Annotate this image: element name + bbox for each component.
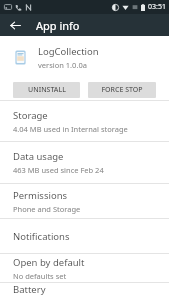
staticText: version 1.0.0a xyxy=(38,60,87,70)
staticText: No defaults set xyxy=(13,271,67,281)
staticText: Notifications xyxy=(13,230,70,243)
staticText: FORCE STOP xyxy=(101,85,143,95)
button[interactable]: Battery xyxy=(0,283,169,300)
button[interactable]: Storage xyxy=(0,101,169,141)
staticText: Phone and Storage xyxy=(13,204,81,214)
button[interactable]: Data usage xyxy=(0,142,169,183)
staticText: Battery xyxy=(13,283,46,296)
button[interactable]: Permissions xyxy=(0,184,169,218)
button[interactable]: LogCollection xyxy=(0,36,169,79)
button[interactable]: Back xyxy=(7,17,23,33)
staticText: Open by default xyxy=(13,256,85,269)
button[interactable]: UNINSTALL xyxy=(13,82,80,98)
button[interactable]: FORCE STOP xyxy=(88,82,156,98)
staticText: UNINSTALL xyxy=(28,85,66,95)
button[interactable]: Notifications xyxy=(0,219,169,253)
button[interactable]: Open by default xyxy=(0,254,169,282)
staticText: 463 MB used since Feb 24 xyxy=(13,165,104,175)
staticText: LogCollection xyxy=(38,45,99,58)
staticText: Storage xyxy=(13,109,48,122)
staticText: Data usage xyxy=(13,150,64,163)
staticText: App info xyxy=(36,18,80,33)
staticText: 03:51 xyxy=(148,2,166,12)
staticText: Permissions xyxy=(13,189,68,202)
staticText: 4.04 MB used in Internal storage xyxy=(13,124,128,134)
